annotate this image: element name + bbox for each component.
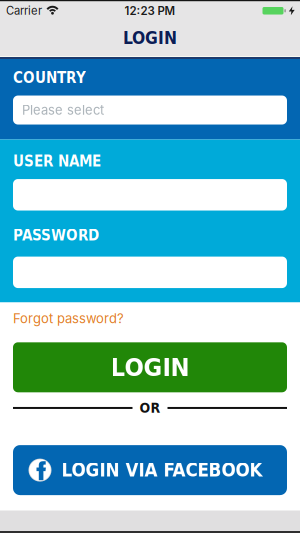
staticText: LOGIN (110, 353, 189, 382)
button[interactable]: LOGIN VIA FACEBOOK (13, 445, 287, 495)
button[interactable]: Country — please select (13, 95, 287, 124)
staticText: Forgot password? (13, 310, 124, 326)
staticText: 12:23 PM (124, 4, 175, 18)
staticText: COUNTRY (13, 69, 86, 86)
button[interactable]: User name (13, 179, 287, 210)
staticText: Please select (22, 102, 104, 118)
button[interactable]: Forgot password? (13, 310, 124, 326)
staticText: USER NAME (13, 152, 101, 170)
staticText: OR (139, 400, 160, 416)
staticText: PASSWORD (13, 226, 99, 244)
staticText: Carrier (6, 4, 42, 18)
staticText: LOGIN VIA FACEBOOK (61, 459, 262, 481)
button[interactable]: LOGIN (13, 342, 287, 392)
button[interactable]: Password (13, 257, 287, 288)
staticText: LOGIN (123, 28, 177, 48)
